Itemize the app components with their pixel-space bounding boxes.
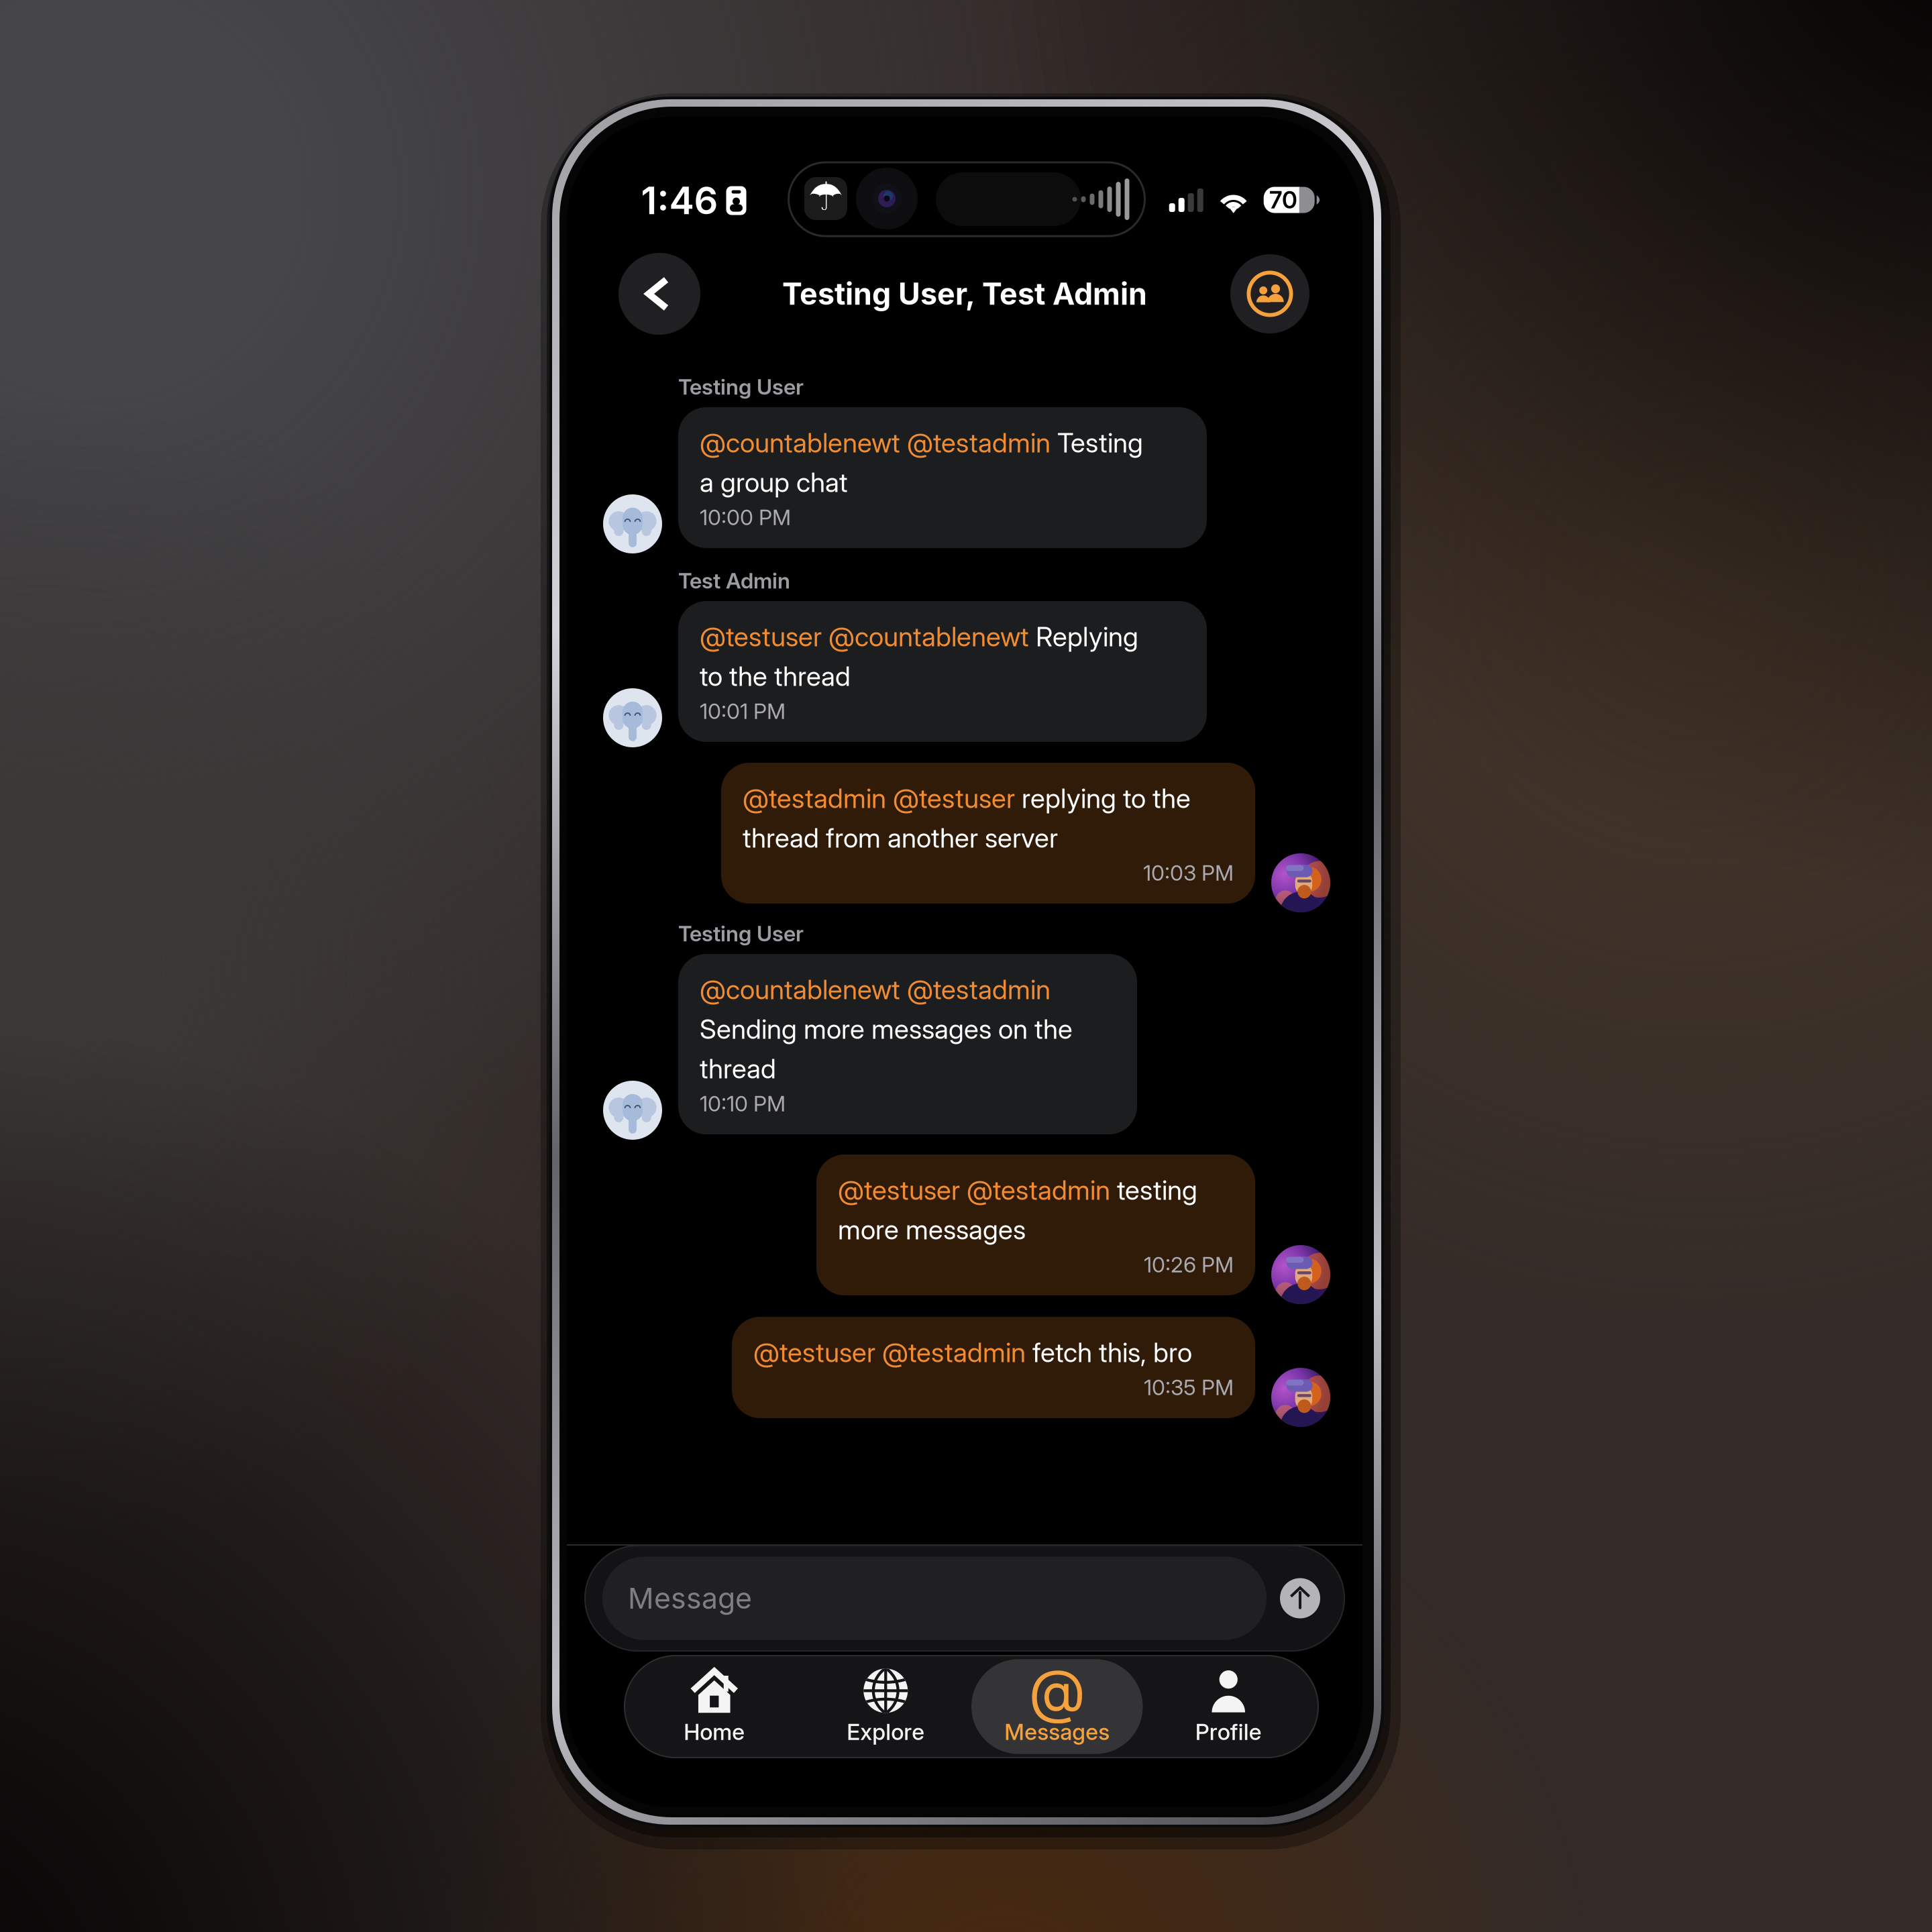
- staticText: Explore: [847, 1718, 925, 1745]
- staticText: to the thread: [700, 660, 851, 692]
- staticText: @testuser @testadmin: [838, 1174, 1110, 1206]
- staticText: Home: [684, 1718, 745, 1745]
- staticText: 70: [1269, 186, 1297, 214]
- staticText: thread from another server: [743, 822, 1058, 854]
- staticText: 10:26 PM: [1144, 1252, 1234, 1277]
- button[interactable]: Explore: [800, 1659, 971, 1754]
- staticText: 10:00 PM: [700, 504, 791, 530]
- staticText: replying to the: [1015, 782, 1191, 815]
- staticText: 10:03 PM: [1143, 860, 1234, 886]
- staticText: ☂: [808, 174, 844, 219]
- staticText: Testing: [1051, 427, 1143, 459]
- button[interactable]: Group members: [1229, 253, 1311, 335]
- staticText: Testing User: [678, 921, 804, 947]
- staticText: @testadmin @testuser: [743, 782, 1015, 815]
- staticText: @testuser @testadmin: [753, 1336, 1026, 1369]
- staticText: Test Admin: [678, 568, 790, 594]
- staticText: more messages: [838, 1213, 1026, 1246]
- staticText: thread: [700, 1052, 776, 1085]
- staticText: Profile: [1195, 1718, 1262, 1745]
- staticText: a group chat: [700, 466, 848, 499]
- staticText: Testing User: [678, 374, 804, 400]
- button[interactable]: Send: [1280, 1578, 1320, 1618]
- staticText: fetch this, bro: [1026, 1336, 1192, 1369]
- staticText: Message: [628, 1581, 752, 1616]
- staticText: 10:01 PM: [700, 698, 786, 724]
- button[interactable]: @: [971, 1659, 1143, 1754]
- staticText: 10:10 PM: [700, 1091, 786, 1116]
- button[interactable]: Profile: [1143, 1659, 1314, 1754]
- staticText: @testuser @countablenewt: [700, 620, 1029, 653]
- staticText: Testing User, Test Admin: [782, 276, 1147, 312]
- button[interactable]: Home: [629, 1659, 800, 1754]
- staticText: 10:35 PM: [1144, 1374, 1234, 1400]
- staticText: @countablenewt @testadmin: [700, 427, 1051, 459]
- staticText: @countablenewt @testadmin: [700, 973, 1051, 1006]
- staticText: @: [1029, 1655, 1086, 1726]
- staticText: testing: [1110, 1174, 1197, 1206]
- button[interactable]: Back: [619, 253, 700, 335]
- staticText: Replying: [1029, 620, 1138, 653]
- staticText: Sending more messages on the: [700, 1013, 1073, 1045]
- staticText: Messages: [1004, 1718, 1110, 1745]
- staticText: 1:46: [641, 178, 718, 223]
